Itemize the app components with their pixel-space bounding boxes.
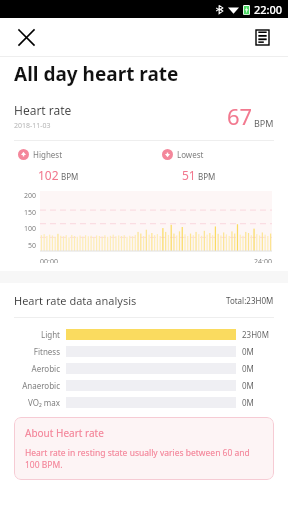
staticText: 2018-11-03: [14, 121, 51, 131]
staticText: 67: [227, 101, 253, 131]
staticText: 22:00: [254, 2, 283, 17]
staticText: About Heart rate: [25, 426, 104, 440]
staticText: 23H0M: [242, 329, 269, 340]
staticText: Total:23H0M: [226, 295, 274, 306]
staticText: 150: [23, 208, 36, 218]
staticText: All day heart rate: [14, 61, 179, 87]
staticText: 0M: [242, 363, 254, 374]
staticText: 100: [23, 224, 36, 234]
button[interactable]: Records: [248, 23, 276, 51]
staticText: Highest: [33, 149, 63, 160]
staticText: Anaerobic: [22, 380, 60, 391]
staticText: 00:00: [40, 257, 58, 263]
staticText: 51: [182, 167, 196, 183]
staticText: 0M: [242, 397, 254, 408]
staticText: Heart rate data analysis: [14, 293, 226, 308]
staticText: Heart rate in resting state usually vari…: [25, 447, 263, 471]
button[interactable]: Close: [12, 23, 40, 51]
staticText: 24:00: [254, 257, 272, 263]
staticText: 200: [23, 191, 36, 201]
staticText: 0M: [242, 380, 254, 391]
staticText: VO₂ max: [27, 397, 60, 408]
staticText: 50: [27, 241, 36, 251]
staticText: Lowest: [177, 149, 204, 160]
staticText: BPM: [61, 171, 79, 182]
staticText: Fitness: [33, 346, 60, 357]
staticText: Light: [40, 329, 60, 340]
staticText: BPM: [198, 171, 216, 182]
staticText: 0M: [242, 346, 254, 357]
staticText: BPM: [254, 117, 274, 129]
staticText: Heart rate: [14, 102, 72, 118]
staticText: 102: [38, 167, 59, 183]
staticText: Aerobic: [31, 363, 60, 374]
